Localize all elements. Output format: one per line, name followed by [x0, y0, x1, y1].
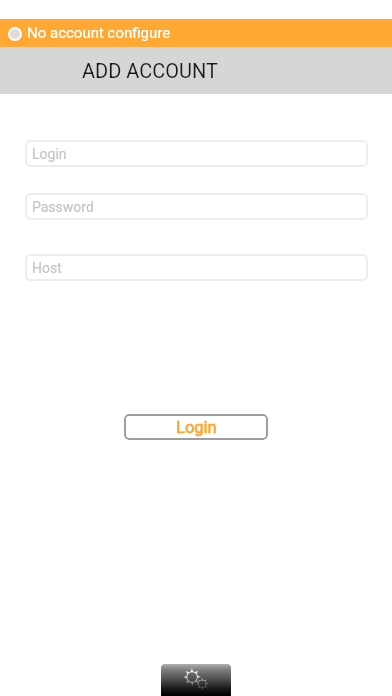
staticText: Login: [176, 418, 217, 437]
button[interactable]: Host: [25, 254, 368, 281]
staticText: Login: [32, 146, 67, 162]
button[interactable]: Password: [25, 193, 368, 220]
staticText: No account configure: [27, 24, 171, 42]
button[interactable]: Login: [124, 414, 268, 440]
staticText: ADD ACCOUNT: [82, 59, 218, 82]
staticText: Host: [32, 260, 62, 276]
button[interactable]: No account configure: [0, 19, 392, 47]
staticText: Password: [32, 199, 94, 215]
button[interactable]: Settings: [161, 664, 231, 696]
button[interactable]: Login: [25, 140, 368, 167]
